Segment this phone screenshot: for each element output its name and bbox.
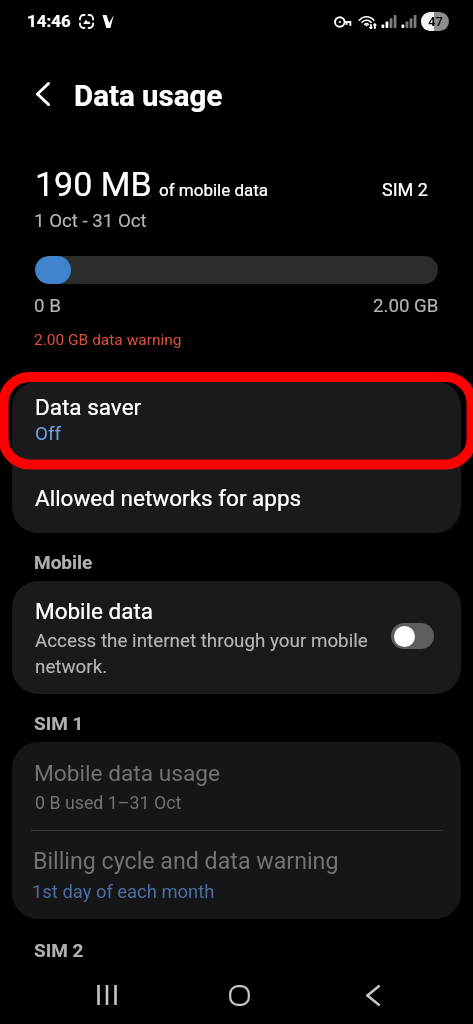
staticText: 47 bbox=[428, 14, 443, 29]
button[interactable]: Allowed networks for apps bbox=[12, 459, 461, 533]
staticText: SIM 2 bbox=[382, 179, 428, 200]
staticText: SIM 2 bbox=[34, 939, 84, 961]
staticText: 190 MB bbox=[35, 164, 152, 204]
staticText: Allowed networks for apps bbox=[35, 485, 302, 511]
staticText: Mobile bbox=[34, 551, 93, 573]
staticText: SIM 1 bbox=[34, 712, 84, 734]
staticText: Billing cycle and data warning bbox=[33, 847, 339, 874]
staticText: 0 B bbox=[34, 295, 61, 317]
staticText: 1 Oct - 31 Oct bbox=[34, 210, 147, 232]
button[interactable]: Data saver bbox=[12, 381, 461, 459]
staticText: Mobile data usage bbox=[34, 760, 221, 787]
staticText: 1st day of each month bbox=[32, 881, 215, 903]
staticText: Mobile data bbox=[35, 598, 154, 624]
button[interactable]: Back bbox=[306, 966, 439, 1024]
staticText: Data saver bbox=[35, 394, 142, 420]
staticText: of mobile data bbox=[159, 180, 269, 200]
button[interactable]: Mobile data bbox=[12, 581, 461, 694]
button[interactable]: Navigate up bbox=[21, 72, 65, 116]
button[interactable]: Mobile data usage bbox=[12, 742, 461, 830]
staticText: Data usage bbox=[74, 79, 223, 114]
staticText: 2.00 GB bbox=[373, 295, 439, 317]
staticText: 14:46 bbox=[27, 11, 71, 31]
staticText: Access the internet through your mobile … bbox=[35, 630, 377, 677]
staticText: 2.00 GB data warning bbox=[34, 331, 182, 349]
button[interactable]: Recent apps bbox=[40, 966, 173, 1024]
button[interactable]: Home bbox=[173, 966, 306, 1024]
staticText: 0 B used 1–31 Oct bbox=[35, 792, 182, 813]
button[interactable]: Billing cycle and data warning bbox=[12, 831, 461, 919]
staticText: Off bbox=[35, 423, 62, 445]
